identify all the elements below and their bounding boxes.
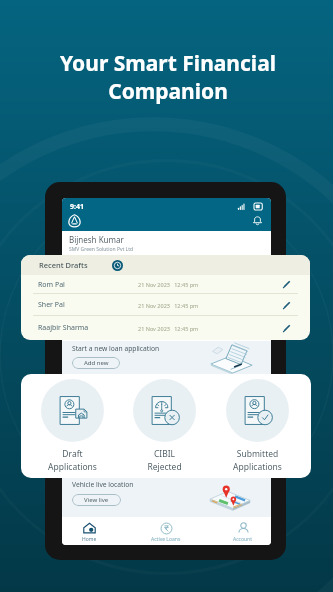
button[interactable]: Raajbir Sharma xyxy=(21,316,310,340)
other: Notifications xyxy=(252,215,263,226)
staticText: Vehicle live location xyxy=(72,480,134,489)
button[interactable]: CIBIL Rejected xyxy=(116,379,212,473)
staticText: Start a new loan application xyxy=(72,344,160,353)
staticText: 21 Nov 2023 12:45 pm xyxy=(138,302,199,309)
button[interactable]: Active Loans xyxy=(140,517,192,545)
staticText: Home xyxy=(82,536,97,543)
button[interactable]: Submitted Applications xyxy=(209,379,305,473)
staticText: SMV Green Solution Pvt Ltd xyxy=(69,246,134,253)
staticText: Rom Pal xyxy=(38,280,65,290)
staticText: Active Loans xyxy=(151,536,181,543)
button[interactable]: Add new xyxy=(72,357,120,369)
staticText: Sher Pal xyxy=(38,300,65,310)
staticText: Submitted Applications xyxy=(233,448,282,473)
staticText: Raajbir Sharma xyxy=(38,323,89,333)
staticText: Bijnesh Kumar xyxy=(69,234,124,245)
button[interactable]: Account xyxy=(217,517,269,545)
other: Edit draft xyxy=(282,301,291,310)
staticText: Recent Drafts xyxy=(39,260,88,270)
button[interactable]: Sher Pal xyxy=(21,294,310,316)
staticText: View live xyxy=(84,496,109,504)
staticText: 9:41 xyxy=(70,202,84,212)
staticText: Your Smart Financial Companion xyxy=(60,49,276,105)
staticText: CIBIL Rejected xyxy=(147,448,182,473)
button[interactable]: Home xyxy=(63,517,115,545)
button[interactable]: Draft Applications xyxy=(24,379,120,473)
staticText: 21 Nov 2023 12:45 pm xyxy=(138,281,199,288)
other: Edit draft xyxy=(282,280,291,289)
button[interactable]: View live xyxy=(72,494,121,506)
staticText: Account xyxy=(233,536,253,543)
other: Edit draft xyxy=(282,324,291,333)
staticText: Add new xyxy=(84,359,109,367)
button[interactable]: Rom Pal xyxy=(21,275,310,294)
staticText: 21 Nov 2023 12:45 pm xyxy=(138,325,199,332)
staticText: Draft Applications xyxy=(48,448,97,473)
